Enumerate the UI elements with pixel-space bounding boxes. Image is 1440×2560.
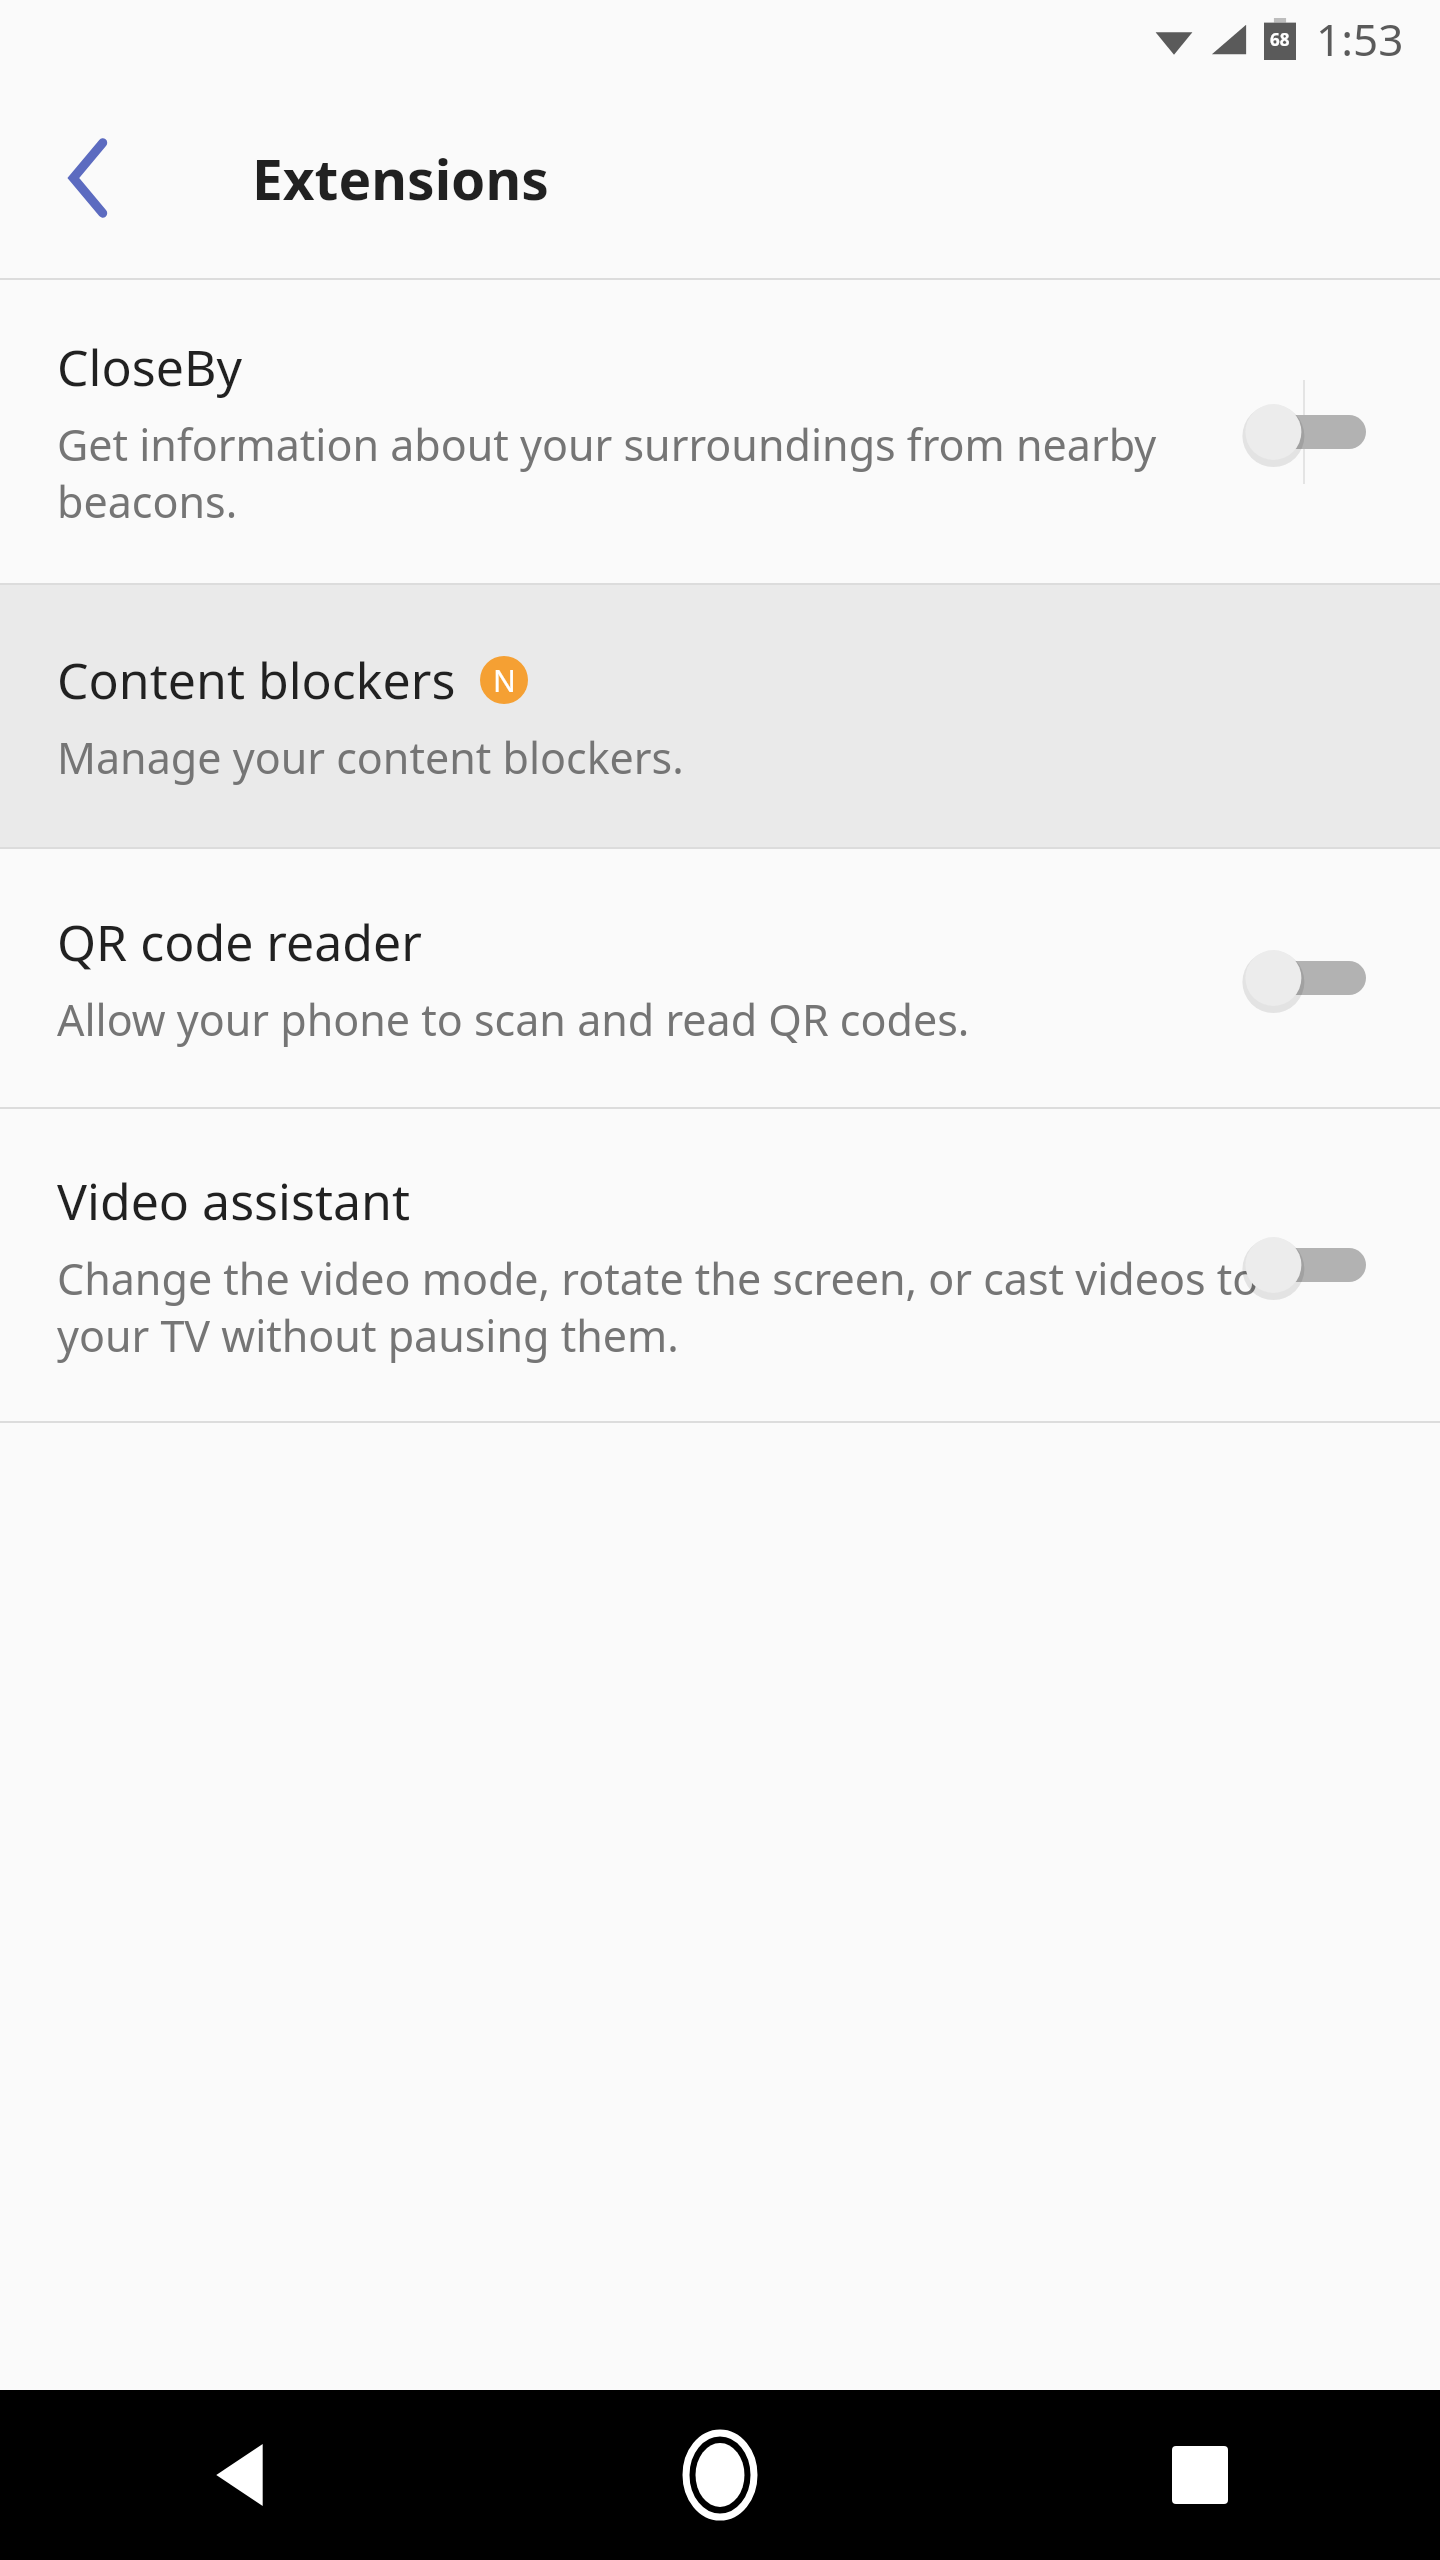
button[interactable]: Toggle CloseBy [1228, 377, 1378, 487]
staticText: 68 [1270, 28, 1290, 51]
staticText: CloseBy [57, 333, 242, 401]
button[interactable]: Toggle Video assistant [1228, 1210, 1378, 1320]
button[interactable]: Recent apps [960, 2390, 1440, 2560]
staticText: Get information about your surroundings … [57, 415, 1260, 530]
staticText: Video assistant [57, 1167, 410, 1235]
staticText: Change the video mode, rotate the screen… [57, 1249, 1260, 1364]
button[interactable]: Content blockers [0, 585, 1440, 847]
staticText: 1:53 [1316, 9, 1404, 69]
button[interactable]: QR code reader [0, 849, 1440, 1107]
staticText: N [493, 660, 516, 701]
staticText: QR code reader [57, 908, 422, 976]
button[interactable]: Video assistant [0, 1109, 1440, 1421]
button[interactable]: Home [480, 2390, 960, 2560]
staticText: Allow your phone to scan and read QR cod… [57, 990, 970, 1049]
staticText: Manage your content blockers. [57, 728, 684, 787]
staticText: Content blockers [57, 646, 456, 714]
button[interactable]: CloseBy [0, 280, 1440, 583]
button[interactable]: Back [28, 118, 148, 238]
button[interactable]: Back [0, 2390, 480, 2560]
staticText: Extensions [252, 141, 549, 216]
button[interactable]: Toggle QR code reader [1228, 923, 1378, 1033]
